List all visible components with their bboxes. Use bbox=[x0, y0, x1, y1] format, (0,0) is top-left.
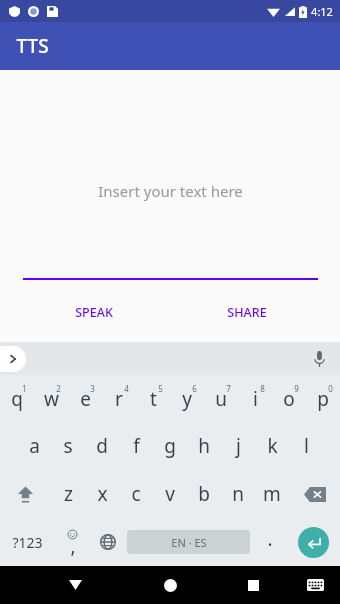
staticText: ?123 bbox=[12, 533, 43, 552]
staticText: p bbox=[317, 386, 329, 412]
button[interactable]: u bbox=[204, 375, 238, 422]
button[interactable]: j bbox=[221, 422, 255, 470]
staticText: 3 bbox=[90, 383, 95, 394]
button[interactable]: q bbox=[0, 375, 34, 422]
button[interactable]: e bbox=[68, 375, 102, 422]
staticText: c bbox=[131, 481, 141, 507]
button[interactable]: k bbox=[255, 422, 289, 470]
button[interactable]: r bbox=[102, 375, 136, 422]
button[interactable]: y bbox=[170, 375, 204, 422]
button[interactable]: z bbox=[51, 470, 85, 518]
staticText: 4 bbox=[124, 383, 129, 394]
staticText: q bbox=[11, 386, 23, 412]
button[interactable]: h bbox=[187, 422, 221, 470]
staticText: 6 bbox=[192, 383, 197, 394]
button[interactable]: Expand suggestions bbox=[0, 346, 26, 372]
staticText: l bbox=[304, 433, 309, 459]
staticText: 1 bbox=[22, 383, 27, 394]
staticText: i bbox=[253, 386, 258, 412]
staticText: 7 bbox=[226, 383, 231, 394]
staticText: Insert your text here bbox=[98, 181, 243, 201]
button[interactable]: ?123 bbox=[0, 518, 54, 566]
staticText: SHARE bbox=[227, 304, 267, 321]
button[interactable]: p bbox=[306, 375, 340, 422]
staticText: z bbox=[64, 481, 73, 507]
button[interactable]: a bbox=[17, 422, 51, 470]
staticText: b bbox=[198, 481, 210, 507]
staticText: e bbox=[80, 386, 91, 412]
staticText: 0 bbox=[328, 383, 333, 394]
button[interactable]: , bbox=[54, 518, 90, 566]
staticText: o bbox=[283, 386, 295, 412]
button[interactable]: t bbox=[136, 375, 170, 422]
staticText: 9 bbox=[294, 383, 299, 394]
staticText: x bbox=[97, 481, 108, 507]
staticText: f bbox=[133, 433, 140, 459]
staticText: n bbox=[232, 481, 244, 507]
staticText: TTS bbox=[16, 33, 49, 59]
staticText: EN · ES bbox=[171, 535, 207, 550]
button[interactable]: f bbox=[119, 422, 153, 470]
button[interactable]: o bbox=[272, 375, 306, 422]
staticText: t bbox=[150, 386, 157, 412]
staticText: a bbox=[29, 433, 40, 459]
staticText: k bbox=[267, 433, 278, 459]
button[interactable]: Change language bbox=[90, 518, 125, 566]
staticText: s bbox=[63, 433, 73, 459]
staticText: r bbox=[115, 386, 123, 412]
staticText: u bbox=[215, 386, 227, 412]
button[interactable]: s bbox=[51, 422, 85, 470]
button[interactable]: x bbox=[85, 470, 119, 518]
staticText: v bbox=[165, 481, 175, 507]
button[interactable]: Backspace bbox=[289, 470, 340, 518]
staticText: h bbox=[198, 433, 210, 459]
button[interactable]: n bbox=[221, 470, 255, 518]
button[interactable]: Enter bbox=[298, 527, 329, 558]
button[interactable]: . bbox=[252, 518, 287, 566]
button[interactable]: Hide keyboard bbox=[58, 568, 92, 602]
button[interactable]: m bbox=[255, 470, 289, 518]
button[interactable]: SHARE bbox=[170, 298, 323, 327]
button[interactable]: SPEAK bbox=[17, 298, 170, 327]
button[interactable]: EN · ES bbox=[127, 530, 250, 554]
staticText: 2 bbox=[56, 383, 61, 394]
button[interactable]: l bbox=[289, 422, 323, 470]
button[interactable]: Recents bbox=[236, 568, 270, 602]
staticText: . bbox=[267, 526, 273, 552]
button[interactable]: v bbox=[153, 470, 187, 518]
staticText: 5 bbox=[158, 383, 163, 394]
staticText: 8 bbox=[260, 383, 265, 394]
staticText: 4:12 bbox=[311, 4, 333, 19]
button[interactable]: Switch keyboard bbox=[300, 570, 330, 600]
staticText: SPEAK bbox=[75, 304, 113, 321]
button[interactable]: w bbox=[34, 375, 68, 422]
staticText: g bbox=[164, 433, 176, 459]
button[interactable]: Voice input bbox=[306, 346, 332, 372]
button[interactable]: Shift bbox=[0, 470, 51, 518]
staticText: w bbox=[44, 386, 59, 412]
button[interactable]: i bbox=[238, 375, 272, 422]
button[interactable]: c bbox=[119, 470, 153, 518]
staticText: y bbox=[182, 386, 192, 412]
button[interactable]: d bbox=[85, 422, 119, 470]
staticText: , bbox=[70, 533, 76, 559]
button[interactable]: b bbox=[187, 470, 221, 518]
button[interactable]: Home bbox=[153, 568, 187, 602]
staticText: m bbox=[263, 481, 281, 507]
staticText: j bbox=[236, 433, 241, 459]
staticText: d bbox=[96, 433, 108, 459]
button[interactable]: g bbox=[153, 422, 187, 470]
